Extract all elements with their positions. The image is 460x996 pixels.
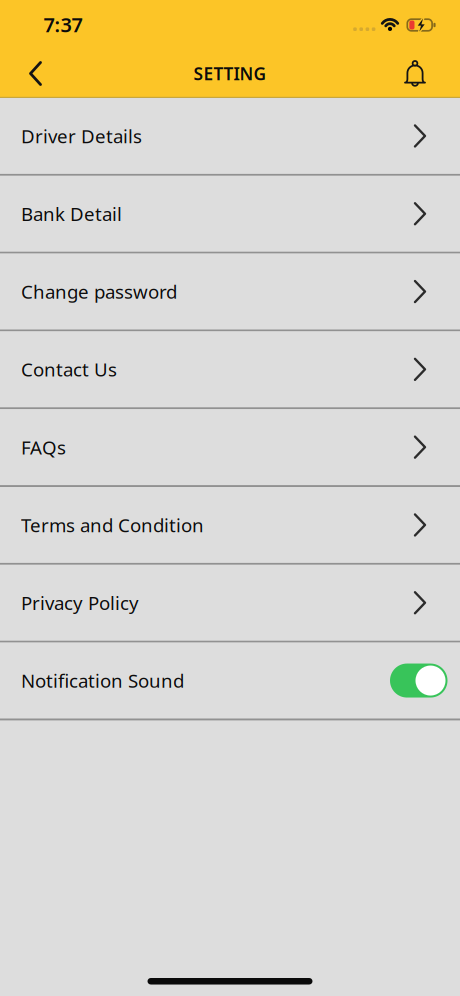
button[interactable]: Contact Us <box>0 331 460 407</box>
staticText: Notification Sound <box>21 668 184 693</box>
button[interactable]: Driver Details <box>0 98 460 174</box>
staticText: SETTING <box>193 62 266 85</box>
button[interactable]: Terms and Condition <box>0 487 460 563</box>
button[interactable]: Change password <box>0 254 460 329</box>
button[interactable]: Back <box>21 53 50 94</box>
staticText: FAQs <box>21 435 66 460</box>
button[interactable]: Bank Detail <box>0 176 460 252</box>
button[interactable]: FAQs <box>0 409 460 485</box>
staticText: Privacy Policy <box>21 590 139 615</box>
staticText: Terms and Condition <box>21 513 204 537</box>
button[interactable]: Notifications <box>398 54 432 94</box>
staticText: Contact Us <box>21 357 117 382</box>
staticText: Bank Detail <box>21 201 122 226</box>
staticText: Driver Details <box>21 124 142 148</box>
staticText: 7:37 <box>43 11 82 38</box>
staticText: Change password <box>21 279 177 304</box>
button[interactable]: Notification Sound <box>390 664 447 698</box>
button[interactable]: Privacy Policy <box>0 565 460 641</box>
